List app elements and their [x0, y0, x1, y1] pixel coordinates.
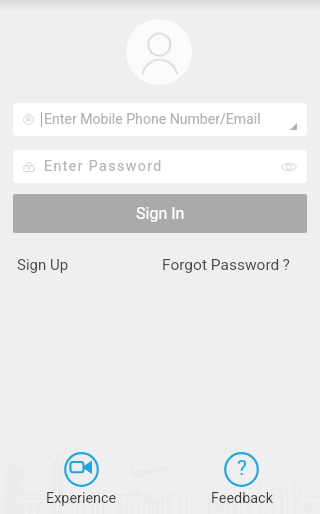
button[interactable]: Enter Password	[13, 150, 307, 183]
staticText: Sign Up	[17, 256, 69, 274]
staticText: ?	[237, 456, 247, 481]
button[interactable]: Forgot Password ?	[162, 256, 290, 274]
staticText: Sign In	[136, 204, 185, 223]
staticText: Enter Mobile Phone Number/Email	[44, 111, 261, 128]
button[interactable]: Experience	[45, 452, 118, 507]
button[interactable]: Sign Up	[17, 256, 69, 274]
staticText: Enter Password	[44, 158, 163, 175]
staticText: Feedback	[211, 490, 273, 507]
staticText: Forgot Password ?	[162, 256, 290, 274]
button[interactable]: Enter Mobile Phone Number/Email	[13, 103, 307, 136]
button[interactable]: Sign In	[13, 194, 307, 233]
staticText: Experience	[46, 490, 117, 507]
button[interactable]: ?	[205, 452, 278, 507]
